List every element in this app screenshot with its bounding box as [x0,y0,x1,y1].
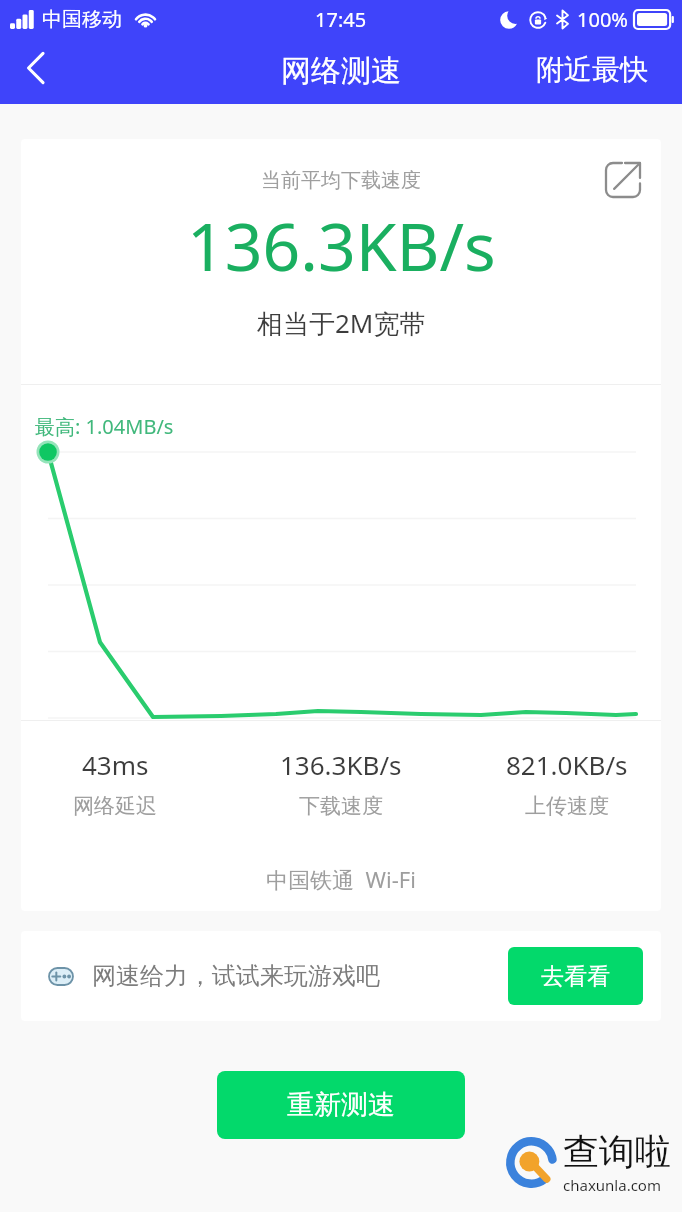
button[interactable]: 网速给力，试试来玩游戏吧 [21,931,661,1021]
staticText: 附近最快 [536,52,648,87]
staticText: 上传速度 [525,793,609,819]
staticText: 查询啦 [563,1129,671,1174]
staticText: 136.3KB/s [187,200,496,290]
staticText: 最高: 1.04MB/s [35,413,174,440]
button[interactable]: Back [3,35,69,101]
staticText: 中国铁通 Wi-Fi [266,864,416,894]
staticText: 821.0KB/s [506,747,628,782]
staticText: 去看看 [541,962,610,991]
staticText: 17:45 [315,6,367,33]
staticText: 下载速度 [299,793,383,819]
staticText: 重新测速 [287,1088,395,1122]
button[interactable]: 重新测速 [217,1071,465,1139]
staticText: 网络延迟 [73,793,157,819]
button[interactable]: 去看看 [508,947,643,1005]
staticText: 相当于2M宽带 [257,305,426,341]
staticText: 网速给力，试试来玩游戏吧 [92,961,380,991]
staticText: 136.3KB/s [280,747,402,782]
staticText: chaxunla.com [563,1175,661,1195]
button[interactable]: Share [600,157,646,203]
staticText: 100% [577,6,628,33]
button[interactable]: 附近最快 [518,40,682,99]
staticText: 当前平均下载速度 [261,168,421,193]
staticText: 中国移动 [42,7,122,32]
staticText: 网络测速 [281,52,401,90]
staticText: 43ms [82,747,149,782]
